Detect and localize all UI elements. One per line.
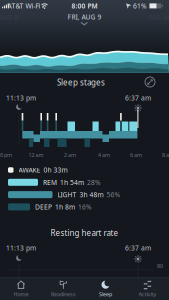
button[interactable]: Select date	[54, 12, 114, 26]
button[interactable]: Readiness	[43, 278, 83, 299]
staticText: AT&T Wi-Fi	[7, 1, 40, 10]
staticText: 12 am	[28, 151, 43, 159]
staticText: 6:37 am	[125, 244, 151, 252]
staticText: Sleep	[99, 291, 112, 298]
staticText: 11:13 pm	[6, 94, 36, 102]
staticText: AWAKE	[18, 166, 40, 174]
staticText: FRI, AUG 9	[67, 13, 101, 21]
staticText: LIGHT	[57, 190, 76, 199]
staticText: 8:00 PM	[71, 1, 97, 10]
staticText: Resting heart rate	[50, 228, 118, 238]
staticText: 1h 8m	[55, 202, 75, 211]
staticText: 8 am	[162, 151, 169, 159]
staticText: 28%	[87, 178, 101, 187]
staticText: 0h 33m	[43, 166, 67, 174]
button[interactable]: Sleep	[85, 278, 125, 299]
staticText: Readiness	[51, 291, 76, 298]
staticText: Home	[13, 291, 28, 298]
staticText: 6:37 am	[125, 94, 151, 102]
button[interactable]: Home	[1, 278, 41, 299]
staticText: 16%	[78, 202, 92, 211]
staticText: 80	[157, 262, 163, 270]
button[interactable]: Activity	[127, 278, 167, 299]
staticText: Activity	[138, 291, 156, 298]
button[interactable]: Expand sleep stages	[144, 76, 155, 87]
staticText: 56%	[106, 190, 120, 199]
staticText: 10 pm	[0, 151, 12, 159]
staticText: 11:13 pm	[6, 244, 36, 252]
staticText: 4 am	[98, 151, 110, 159]
staticText: AUG 8	[0, 13, 18, 22]
staticText: 2 am	[64, 151, 76, 159]
staticText: 1h 54m	[60, 178, 84, 187]
button[interactable]: Next day	[146, 11, 169, 23]
staticText: 3h 48m	[79, 190, 103, 199]
staticText: REM	[43, 178, 57, 187]
staticText: 61%	[133, 1, 147, 10]
button[interactable]: Previous day	[0, 11, 23, 23]
staticText: DEEP	[35, 202, 52, 211]
staticText: 6 am	[130, 151, 142, 159]
staticText: Sleep stages	[57, 77, 105, 88]
